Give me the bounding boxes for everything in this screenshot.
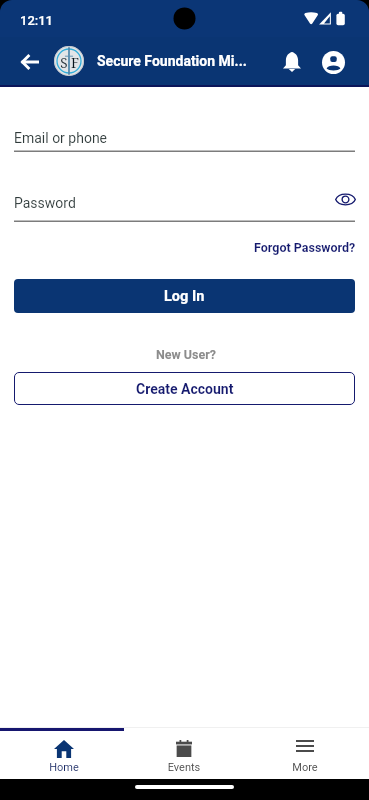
button[interactable]: More: [245, 731, 365, 779]
button[interactable]: Home: [4, 731, 124, 779]
button[interactable]: Account: [315, 44, 351, 80]
button[interactable]: Events: [124, 731, 245, 779]
staticText: Forgot Password?: [254, 240, 356, 255]
staticText: Email or phone: [14, 130, 200, 148]
staticText: Secure Foundation Mi...: [97, 53, 273, 71]
staticText: 12:11: [20, 13, 60, 27]
staticText: Password: [14, 195, 200, 213]
staticText: F: [68, 54, 82, 73]
staticText: Log In: [164, 288, 205, 305]
staticText: New User?: [140, 347, 232, 364]
button[interactable]: Create Account: [14, 372, 355, 405]
button[interactable]: Notifications: [274, 44, 310, 80]
button[interactable]: Forgot Password?: [248, 236, 356, 258]
staticText: More: [275, 761, 335, 776]
button[interactable]: Back: [11, 43, 48, 80]
button[interactable]: Log In: [14, 279, 355, 313]
staticText: Create Account: [136, 381, 234, 397]
button[interactable]: Secure Foundation Mi...: [97, 37, 273, 87]
staticText: S: [57, 54, 71, 73]
staticText: Home: [34, 761, 94, 776]
button[interactable]: Show password: [332, 186, 358, 212]
staticText: Events: [154, 761, 214, 776]
